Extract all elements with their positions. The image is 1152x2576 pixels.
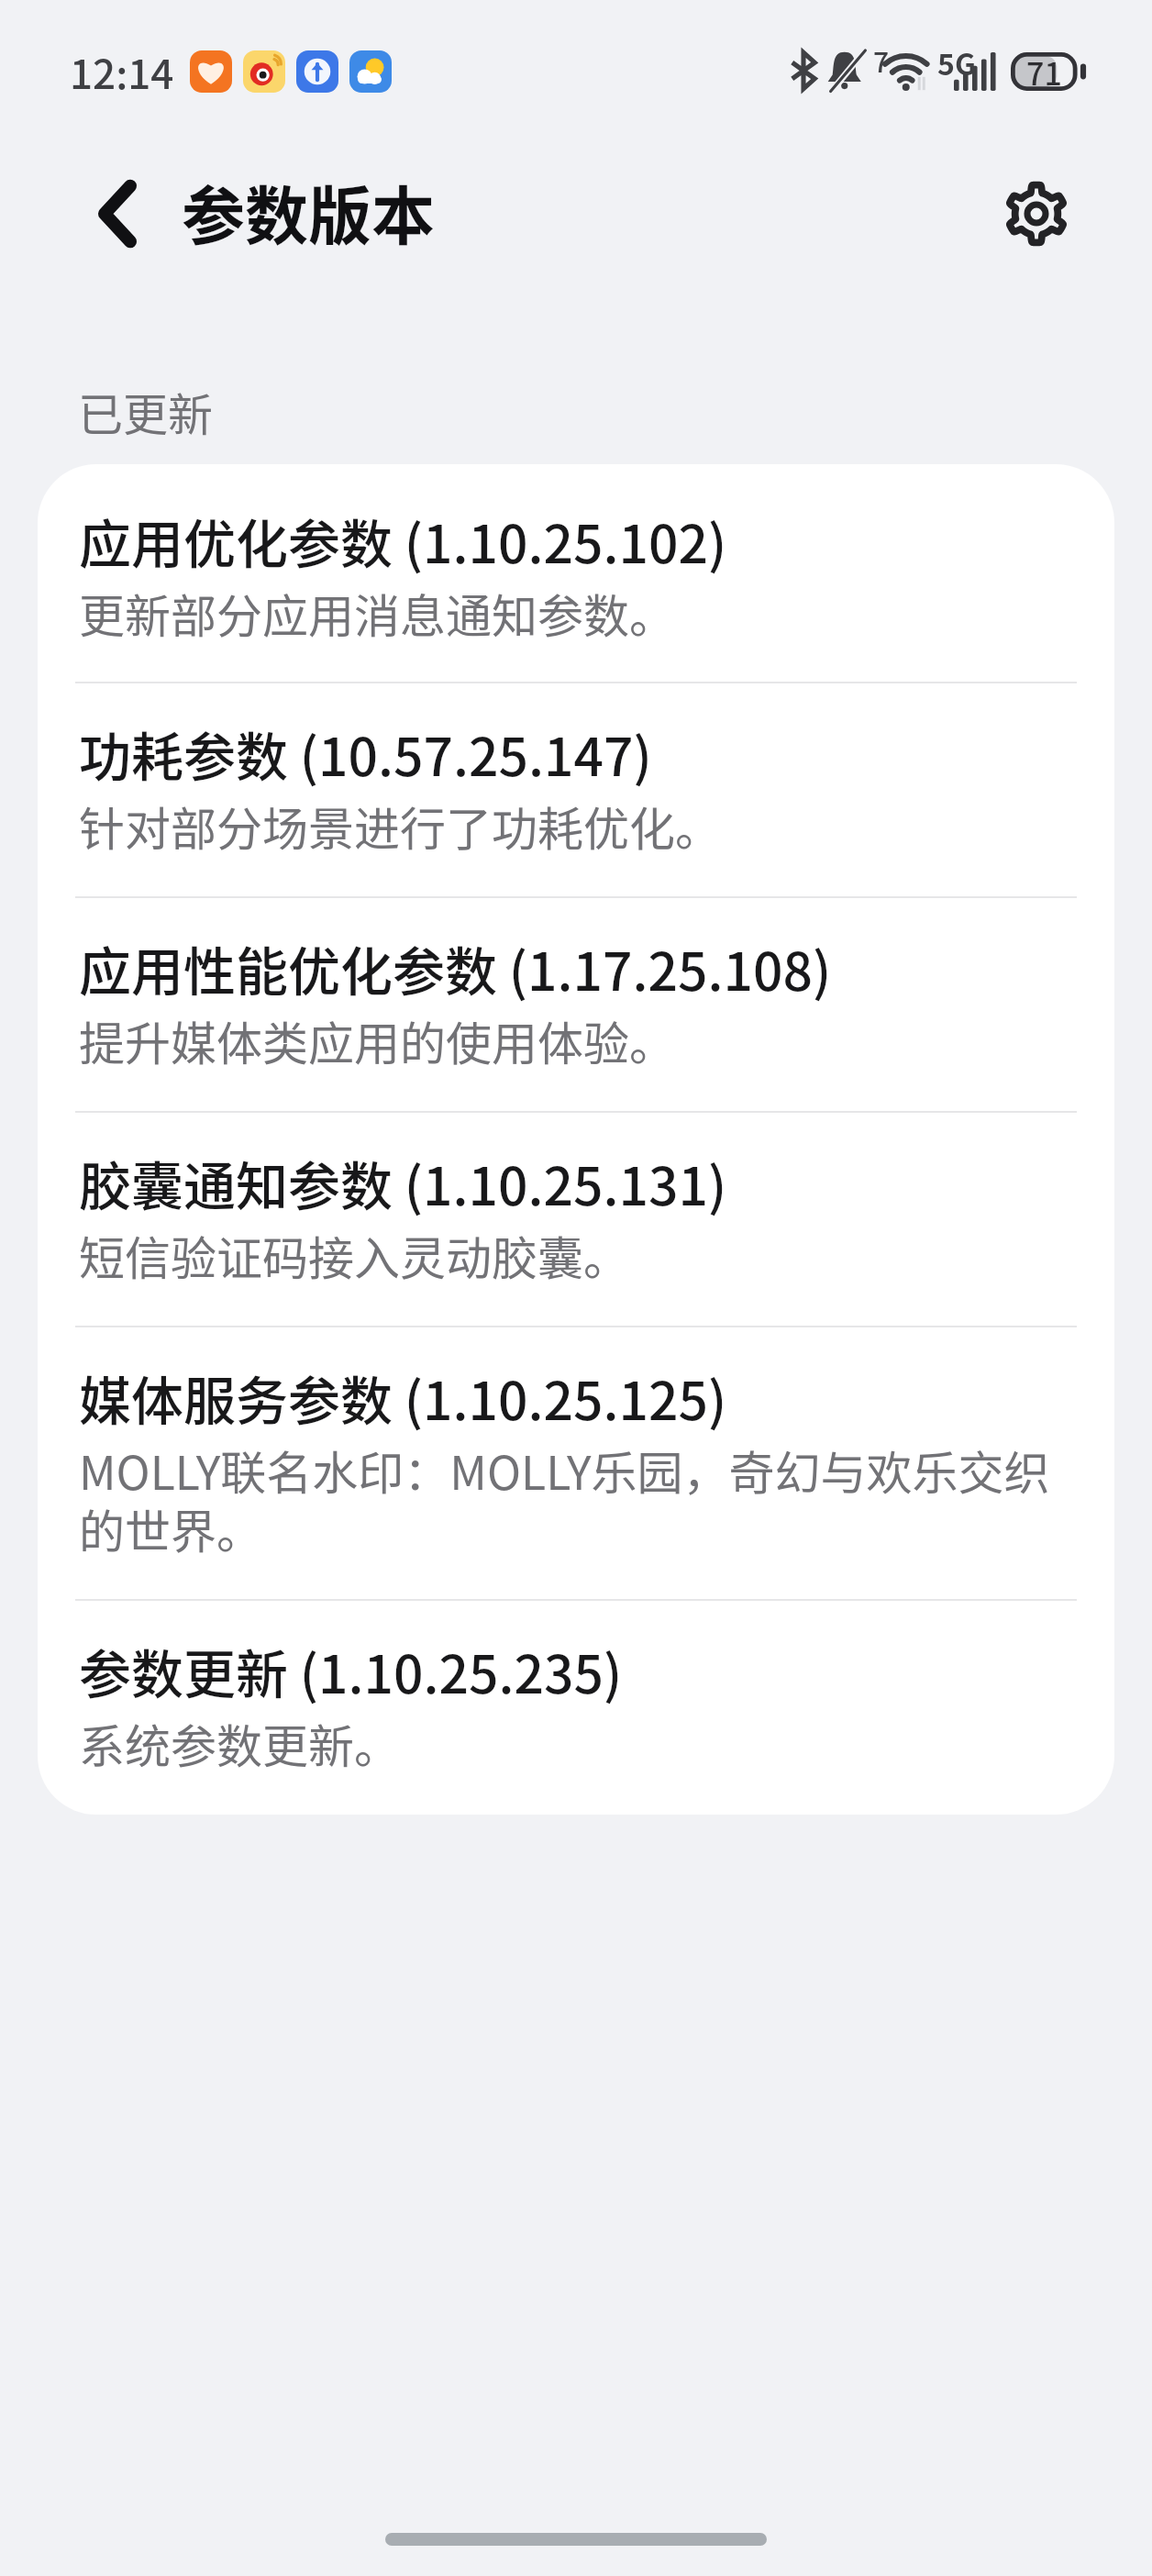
staticText: 应用性能优化参数 (1.17.25.108) <box>79 930 832 1006</box>
staticText: 短信验证码接入灵动胶囊。 <box>79 1222 1062 1288</box>
button[interactable]: 参数更新 (1.10.25.235) <box>38 1601 1114 1815</box>
staticText: 系统参数更新。 <box>79 1710 1062 1776</box>
staticText: 7 <box>873 40 890 80</box>
staticText: 12:14 <box>70 42 174 101</box>
button[interactable]: 胶囊通知参数 (1.10.25.131) <box>38 1113 1114 1326</box>
staticText: 功耗参数 (10.57.25.147) <box>79 716 652 792</box>
staticText: 应用优化参数 (1.10.25.102) <box>79 503 727 579</box>
staticText: 提升媒体类应用的使用体验。 <box>79 1007 1062 1073</box>
staticText: 针对部分场景进行了功耗优化。 <box>79 793 1062 859</box>
staticText: 胶囊通知参数 (1.10.25.131) <box>79 1145 727 1221</box>
staticText: 5G <box>937 41 976 83</box>
button[interactable]: 媒体服务参数 (1.10.25.125) <box>38 1327 1114 1599</box>
staticText: 已更新 <box>78 379 214 444</box>
button[interactable]: Back <box>73 170 161 258</box>
button[interactable]: 功耗参数 (10.57.25.147) <box>38 683 1114 896</box>
staticText: 71 <box>1026 50 1062 88</box>
staticText: 参数版本 <box>182 166 435 258</box>
button[interactable]: 应用优化参数 (1.10.25.102) <box>38 464 1114 682</box>
staticText: 媒体服务参数 (1.10.25.125) <box>79 1360 727 1436</box>
button[interactable]: Settings <box>992 170 1080 258</box>
staticText: MOLLY联名水印：MOLLY乐园，奇幻与欢乐交织的世界。 <box>79 1437 1062 1562</box>
button[interactable]: 应用性能优化参数 (1.17.25.108) <box>38 898 1114 1111</box>
staticText: 参数更新 (1.10.25.235) <box>79 1633 623 1709</box>
staticText: 更新部分应用消息通知参数。 <box>79 580 1062 646</box>
